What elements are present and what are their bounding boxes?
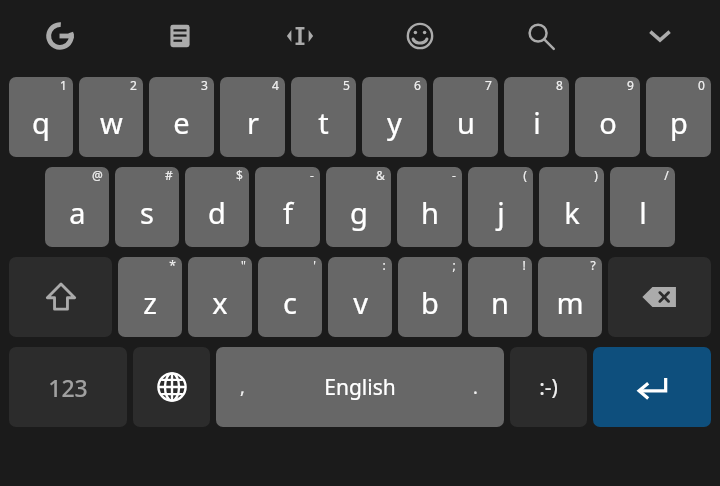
button[interactable]: o <box>575 77 640 157</box>
button[interactable]: p <box>646 77 711 157</box>
staticText: - <box>452 167 456 183</box>
staticText: p <box>670 103 688 142</box>
staticText: 4 <box>272 77 279 93</box>
button[interactable]: Clipboard <box>120 0 240 72</box>
staticText: v <box>353 283 368 322</box>
staticText: t <box>318 103 329 142</box>
staticText: o <box>599 103 617 142</box>
button[interactable]: f <box>255 167 320 247</box>
button[interactable]: d <box>185 167 249 247</box>
staticText: # <box>165 167 173 183</box>
button[interactable]: g <box>326 167 391 247</box>
staticText: f <box>283 193 293 232</box>
staticText: :-) <box>539 373 558 402</box>
staticText: ' <box>313 257 316 273</box>
staticText: z <box>143 283 157 322</box>
staticText: c <box>283 283 297 322</box>
staticText: a <box>69 193 86 232</box>
button[interactable]: t <box>291 77 356 157</box>
staticText: 1 <box>60 77 67 93</box>
staticText: i <box>533 103 541 142</box>
staticText: u <box>457 103 475 142</box>
button[interactable]: x <box>188 257 252 337</box>
button[interactable]: j <box>468 167 533 247</box>
staticText: k <box>564 193 580 232</box>
staticText: : <box>382 257 386 273</box>
button[interactable]: Shift <box>9 257 112 337</box>
staticText: e <box>173 103 190 142</box>
button[interactable]: m <box>538 257 602 337</box>
button[interactable]: English <box>216 347 504 427</box>
button[interactable]: :-) <box>510 347 587 427</box>
staticText: 6 <box>414 77 421 93</box>
button[interactable]: k <box>539 167 604 247</box>
button[interactable]: b <box>398 257 462 337</box>
button[interactable]: Emoji <box>360 0 480 72</box>
staticText: . <box>473 375 478 400</box>
staticText: 8 <box>556 77 563 93</box>
staticText: 2 <box>130 77 137 93</box>
staticText: English <box>324 373 396 402</box>
button[interactable]: y <box>362 77 427 157</box>
button[interactable]: Google <box>0 0 120 72</box>
staticText: ! <box>522 257 526 273</box>
staticText: j <box>497 193 505 232</box>
button[interactable]: Search <box>480 0 600 72</box>
button[interactable]: q <box>9 77 73 157</box>
button[interactable]: 123 <box>9 347 127 427</box>
button[interactable]: s <box>115 167 179 247</box>
button[interactable]: r <box>220 77 285 157</box>
staticText: l <box>639 193 647 232</box>
button[interactable]: a <box>45 167 109 247</box>
button[interactable]: Enter <box>593 347 711 427</box>
button[interactable]: c <box>258 257 322 337</box>
staticText: ; <box>452 257 456 273</box>
button[interactable]: Backspace <box>608 257 711 337</box>
staticText: m <box>556 283 584 322</box>
staticText: g <box>350 193 368 232</box>
staticText: r <box>247 103 259 142</box>
staticText: ) <box>594 167 598 183</box>
staticText: / <box>664 167 669 183</box>
button[interactable]: Change language <box>133 347 210 427</box>
staticText: 3 <box>201 77 208 93</box>
staticText: q <box>32 103 50 142</box>
button[interactable]: i <box>504 77 569 157</box>
button[interactable]: u <box>433 77 498 157</box>
button[interactable]: z <box>118 257 182 337</box>
staticText: w <box>100 103 123 142</box>
staticText: - <box>310 167 314 183</box>
button[interactable]: Hide keyboard <box>600 0 720 72</box>
staticText: d <box>208 193 226 232</box>
button[interactable]: l <box>610 167 675 247</box>
staticText: , <box>240 375 245 400</box>
staticText: & <box>376 167 385 183</box>
button[interactable]: e <box>149 77 214 157</box>
staticText: x <box>212 283 228 322</box>
staticText: 0 <box>698 77 705 93</box>
staticText: " <box>241 257 246 273</box>
staticText: * <box>169 257 176 273</box>
button[interactable]: Move cursor <box>240 0 360 72</box>
staticText: s <box>140 193 154 232</box>
staticText: 9 <box>627 77 634 93</box>
button[interactable]: h <box>397 167 462 247</box>
staticText: ? <box>590 257 596 273</box>
staticText: @ <box>92 167 103 183</box>
staticText: 123 <box>48 372 88 403</box>
staticText: n <box>491 283 509 322</box>
staticText: 7 <box>485 77 492 93</box>
button[interactable]: n <box>468 257 532 337</box>
staticText: y <box>387 103 402 142</box>
staticText: ( <box>523 167 527 183</box>
staticText: b <box>421 283 439 322</box>
staticText: 5 <box>343 77 350 93</box>
staticText: $ <box>236 167 243 183</box>
button[interactable]: w <box>79 77 143 157</box>
staticText: h <box>421 193 439 232</box>
button[interactable]: v <box>328 257 392 337</box>
